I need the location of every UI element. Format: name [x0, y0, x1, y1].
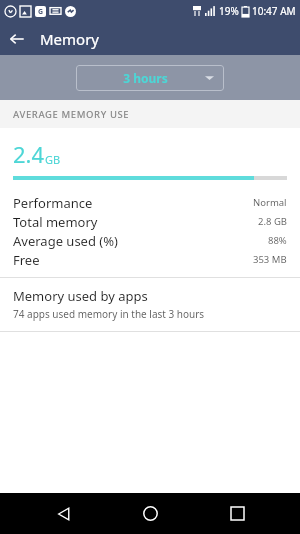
staticText: Free [13, 251, 253, 269]
staticText: Total memory [13, 213, 258, 231]
button[interactable]: Memory used by apps [0, 278, 300, 331]
staticText: 3 hours [86, 70, 205, 86]
button[interactable]: Performance [0, 193, 300, 212]
staticText: 88% [268, 234, 287, 247]
button[interactable]: Average used (%) [0, 231, 300, 250]
button[interactable]: 3 hours [76, 65, 224, 91]
button[interactable]: Back [0, 22, 34, 55]
button[interactable]: Total memory [0, 212, 300, 231]
staticText: 2.4 [13, 139, 45, 169]
staticText: Memory [40, 29, 100, 49]
staticText: Memory used by apps [13, 287, 148, 305]
staticText: Normal [253, 196, 287, 209]
button[interactable]: Home [127, 493, 173, 534]
staticText: 10:47 AM [252, 4, 296, 18]
staticText: Performance [13, 194, 253, 212]
staticText: GB [45, 152, 61, 167]
staticText: G [38, 7, 44, 17]
staticText: 19% [219, 4, 239, 18]
button[interactable]: Recent apps [214, 493, 260, 534]
staticText: 353 MB [253, 253, 287, 266]
button[interactable]: Back [41, 493, 87, 534]
button[interactable]: Free [0, 250, 300, 269]
staticText: Average used (%) [13, 232, 268, 250]
staticText: AVERAGE MEMORY USE [13, 108, 130, 121]
staticText: 74 apps used memory in the last 3 hours [13, 307, 205, 321]
staticText: 2.8 GB [258, 215, 287, 228]
